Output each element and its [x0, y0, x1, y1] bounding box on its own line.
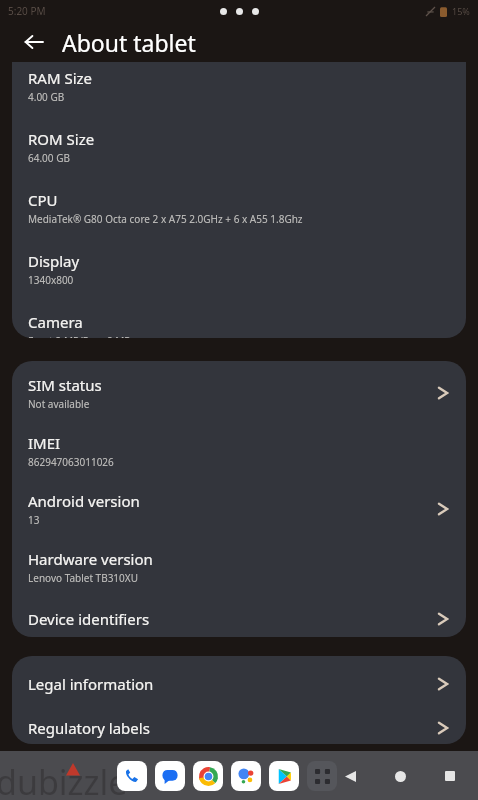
button[interactable]: Back [18, 26, 50, 58]
button[interactable]: Legal information [12, 656, 466, 696]
staticText: Lenovo Tablet TB310XU [28, 571, 138, 585]
staticText: Legal information [28, 674, 154, 694]
staticText: 13 [28, 513, 40, 527]
staticText: Front 2 MP/Rear 8 MP [28, 334, 131, 338]
button[interactable]: Home [388, 764, 412, 788]
button[interactable] [193, 761, 223, 791]
button[interactable]: Back [338, 764, 362, 788]
staticText: Device identifiers [28, 609, 150, 629]
staticText: MediaTek® G80 Octa core 2 x A75 2.0GHz +… [28, 212, 303, 226]
button[interactable]: Display [12, 226, 466, 287]
button[interactable]: SIM status [12, 361, 466, 411]
button[interactable] [155, 761, 185, 791]
staticText: Camera [28, 312, 83, 332]
staticText: SIM status [28, 375, 102, 395]
button[interactable] [269, 761, 299, 791]
staticText: Not available [28, 397, 90, 411]
staticText: 15% [452, 5, 470, 17]
staticText: Android version [28, 491, 140, 511]
staticText: 5:20 PM [8, 4, 46, 18]
button[interactable]: All apps [307, 761, 337, 791]
button[interactable]: Hardware version [12, 527, 466, 585]
staticText: About tablet [62, 27, 196, 58]
staticText: CPU [28, 190, 58, 210]
staticText: IMEI [28, 433, 61, 453]
staticText: 4.00 GB [28, 90, 65, 104]
button[interactable]: ROM Size [12, 104, 466, 165]
button[interactable]: Android version [12, 469, 466, 527]
button[interactable]: Camera [12, 287, 466, 338]
button[interactable]: RAM Size [12, 62, 466, 104]
staticText: ROM Size [28, 129, 95, 149]
button[interactable]: Regulatory labels [12, 696, 466, 740]
staticText: 862947063011026 [28, 455, 114, 469]
staticText: Display [28, 251, 80, 271]
button[interactable]: IMEI [12, 411, 466, 469]
button[interactable]: Recent apps [438, 764, 462, 788]
staticText: 64.00 GB [28, 151, 70, 165]
staticText: RAM Size [28, 68, 93, 88]
button[interactable]: CPU [12, 165, 466, 226]
button[interactable] [231, 761, 261, 791]
button[interactable]: Device identifiers [12, 585, 466, 631]
staticText: 1340x800 [28, 273, 74, 287]
staticText: Regulatory labels [28, 718, 150, 738]
staticText: dubizzle [0, 759, 128, 800]
button[interactable] [117, 761, 147, 791]
staticText: Hardware version [28, 549, 153, 569]
